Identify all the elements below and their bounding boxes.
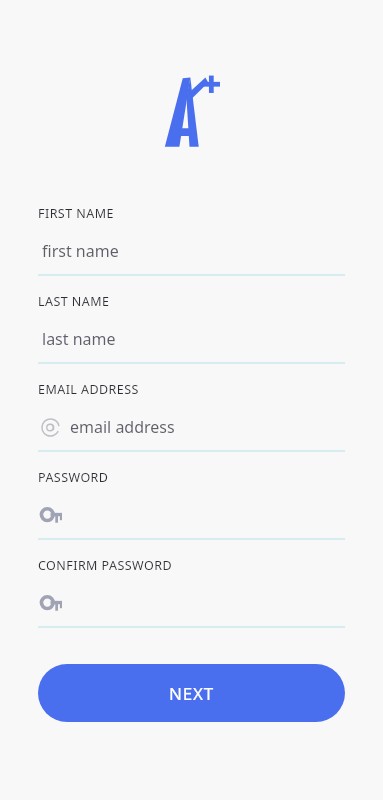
- staticText: email address: [70, 416, 175, 438]
- button[interactable]: CONFIRM PASSWORD: [38, 557, 345, 645]
- staticText: NEXT: [169, 682, 214, 705]
- staticText: LAST NAME: [38, 293, 110, 310]
- button[interactable]: PASSWORD: [38, 469, 345, 557]
- staticText: FIRST NAME: [38, 205, 114, 222]
- staticText: CONFIRM PASSWORD: [38, 557, 173, 574]
- button[interactable]: LAST NAME: [38, 293, 345, 381]
- staticText: first name: [42, 240, 119, 262]
- staticText: last name: [42, 328, 116, 350]
- button[interactable]: FIRST NAME: [38, 205, 345, 293]
- button[interactable]: EMAIL ADDRESS: [38, 381, 345, 469]
- button[interactable]: NEXT: [38, 664, 345, 722]
- staticText: PASSWORD: [38, 469, 109, 486]
- staticText: EMAIL ADDRESS: [38, 381, 139, 398]
